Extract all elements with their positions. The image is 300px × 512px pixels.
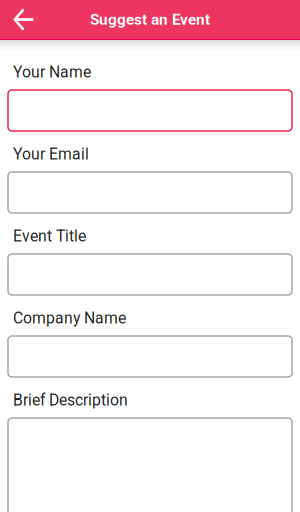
button[interactable]: Your Email <box>8 145 292 213</box>
staticText: Suggest an Event <box>90 10 210 28</box>
button[interactable]: Event Title <box>8 227 292 295</box>
staticText: Brief Description <box>13 391 128 409</box>
button[interactable]: Back <box>0 0 45 39</box>
button[interactable]: Your Name <box>8 63 292 131</box>
button[interactable]: Brief Description <box>8 391 292 512</box>
staticText: Your Email <box>13 145 89 163</box>
staticText: Company Name <box>13 309 126 327</box>
staticText: Your Name <box>13 63 91 81</box>
button[interactable]: Company Name <box>8 309 292 377</box>
staticText: Event Title <box>13 227 86 245</box>
